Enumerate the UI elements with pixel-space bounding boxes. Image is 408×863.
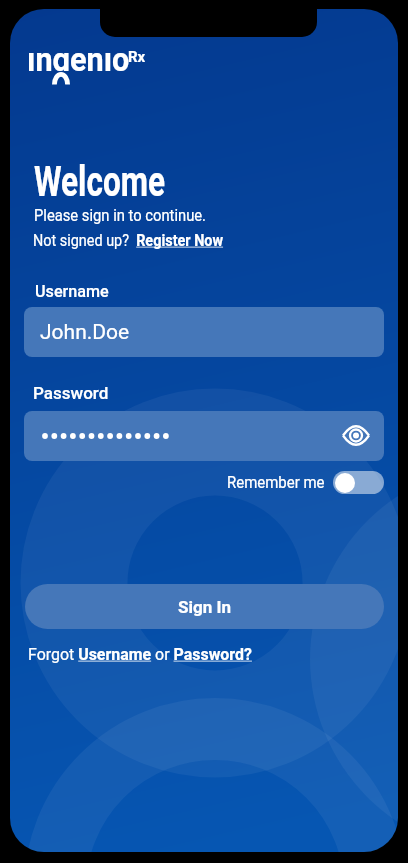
staticText: Username — [35, 281, 109, 301]
staticText: Please sign in to continue. — [34, 205, 207, 225]
staticText: Password — [33, 383, 109, 403]
button[interactable]: Not signed up? Register Now — [33, 228, 258, 248]
button[interactable]: John.Doe — [24, 307, 384, 357]
staticText: Sign In — [178, 597, 231, 617]
staticText: John.Doe — [40, 320, 130, 345]
staticText: Rx — [128, 48, 146, 66]
button[interactable]: Sign In — [25, 584, 384, 629]
button[interactable]: Forgot Username or Password? — [28, 642, 268, 662]
staticText: Not signed up? Register Now — [33, 230, 224, 250]
staticText: Forgot Username or Password? — [28, 644, 253, 664]
button[interactable] — [337, 420, 377, 452]
staticText: Welcome — [34, 157, 165, 206]
button[interactable] — [24, 411, 384, 461]
staticText: ıngenıo — [27, 39, 130, 71]
button[interactable] — [333, 471, 384, 494]
staticText: Remember me — [227, 472, 325, 492]
